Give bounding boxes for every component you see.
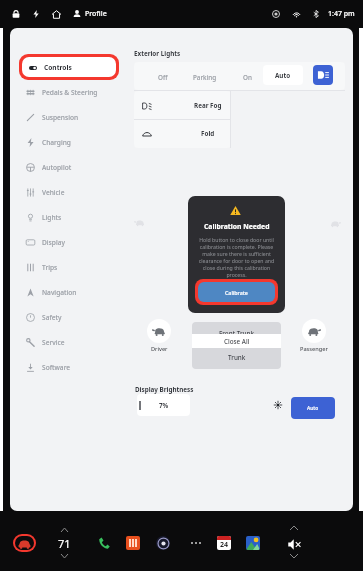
button[interactable]: 71 <box>50 528 78 558</box>
button[interactable]: Auto <box>263 65 303 85</box>
button[interactable]: Calibrate <box>198 282 275 302</box>
button[interactable]: Auto <box>291 397 335 419</box>
staticText: Display Brightness <box>135 385 194 394</box>
staticText: Driver <box>151 345 168 353</box>
button[interactable]: Calendar <box>217 536 231 550</box>
button[interactable]: Car <box>15 536 34 550</box>
button[interactable]: Lights <box>10 205 128 230</box>
button[interactable]: Bluetooth <box>309 7 323 21</box>
button[interactable]: Profile <box>71 7 109 21</box>
button[interactable]: Safety <box>10 305 128 330</box>
button[interactable]: Vehicle <box>10 180 128 205</box>
button[interactable]: More <box>188 535 204 551</box>
button[interactable]: Software <box>10 355 128 380</box>
button[interactable]: Home <box>48 6 64 22</box>
button[interactable]: Front Trunk <box>192 322 281 345</box>
staticText: Exterior Lights <box>134 49 181 58</box>
staticText: Auto <box>307 405 319 412</box>
staticText: Safety <box>42 313 62 322</box>
button[interactable]: Rear Fog <box>134 92 231 119</box>
staticText: Front Trunk <box>219 329 255 338</box>
staticText: Suspension <box>42 113 79 122</box>
staticText: Trips <box>42 263 58 272</box>
staticText: Auto <box>275 71 291 80</box>
staticText: Parking <box>193 73 217 82</box>
staticText: On <box>243 73 252 82</box>
staticText: Close All <box>224 337 250 346</box>
staticText: Charging <box>42 138 71 147</box>
staticText: Off <box>158 73 168 82</box>
staticText: Autopilot <box>42 163 72 172</box>
staticText: Controls <box>44 63 72 72</box>
button[interactable]: Off <box>145 62 181 92</box>
button[interactable]: Autopilot <box>10 155 128 180</box>
staticText: 1:47 pm <box>328 9 355 19</box>
staticText: Fold <box>201 129 215 138</box>
staticText: 24 <box>220 540 229 550</box>
staticText: Software <box>42 363 71 372</box>
button[interactable]: Trunk <box>192 345 281 369</box>
button[interactable]: Mute <box>285 535 303 553</box>
staticText: Service <box>42 338 65 347</box>
staticText: Vehicle <box>42 188 65 197</box>
staticText: Calibration Needed <box>204 222 270 231</box>
staticText: 71 <box>58 536 71 551</box>
button[interactable]: Service <box>10 330 128 355</box>
staticText: 7% <box>159 401 169 410</box>
staticText: Hold button to close door until calibrat… <box>195 236 278 278</box>
button[interactable]: Charging <box>10 130 128 155</box>
button[interactable]: Headlights <box>313 65 333 85</box>
button[interactable]: Suspension <box>10 105 128 130</box>
staticText: Profile <box>85 9 107 19</box>
button[interactable]: Settings <box>269 7 283 21</box>
button[interactable]: Photos <box>246 536 260 550</box>
staticText: Calibrate <box>225 289 248 296</box>
button[interactable]: Driver <box>139 319 179 353</box>
button[interactable]: Parking <box>187 62 223 92</box>
button[interactable]: 7% <box>137 394 190 416</box>
button[interactable]: Display <box>10 230 128 255</box>
button[interactable]: Wifi <box>289 7 303 21</box>
button[interactable]: Trips <box>10 255 128 280</box>
staticText: Passenger <box>300 345 328 353</box>
button[interactable]: Charging <box>28 6 44 22</box>
staticText: Trunk <box>228 353 246 362</box>
staticText: Rear Fog <box>194 101 222 110</box>
button[interactable]: Brightness <box>270 397 286 413</box>
button[interactable]: Close All <box>192 334 281 348</box>
button[interactable]: Lock <box>8 6 24 22</box>
button[interactable]: Controls <box>22 57 116 77</box>
button[interactable]: Media <box>156 536 170 550</box>
button[interactable]: Fold <box>134 119 231 148</box>
button[interactable]: Phone <box>95 534 113 552</box>
staticText: Lights <box>42 213 62 222</box>
button[interactable]: Passenger <box>294 319 334 353</box>
button[interactable]: Radio <box>126 536 140 550</box>
staticText: Display <box>42 238 65 247</box>
button[interactable]: Navigation <box>10 280 128 305</box>
staticText: Navigation <box>42 288 77 297</box>
button[interactable]: On <box>229 62 265 92</box>
button[interactable]: Pedals & Steering <box>10 80 128 105</box>
staticText: Pedals & Steering <box>42 88 98 97</box>
